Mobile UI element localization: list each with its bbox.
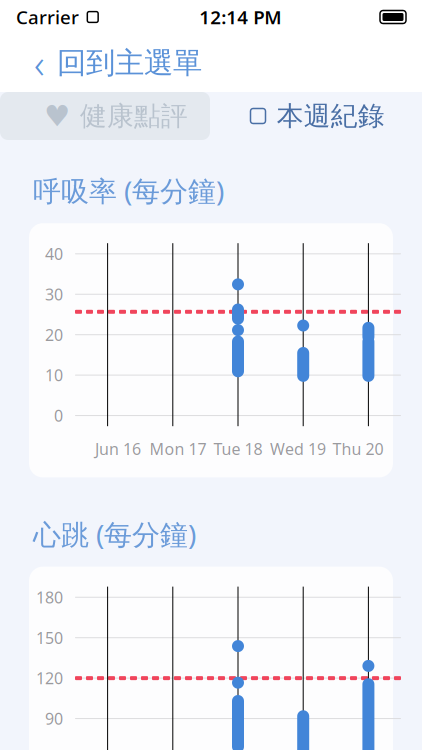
staticText: Mon 17 xyxy=(149,438,206,459)
staticText: 本週紀錄 xyxy=(277,100,385,132)
staticText: 呼吸率 (每分鐘) xyxy=(33,172,224,209)
staticText: 12:14 PM xyxy=(199,5,281,29)
button[interactable]: ♥ xyxy=(0,92,210,140)
staticText: 90 xyxy=(45,708,63,729)
staticText: 120 xyxy=(36,667,63,689)
staticText: 10 xyxy=(45,364,63,386)
staticText: 180 xyxy=(36,587,63,608)
staticText: Thu 20 xyxy=(332,438,383,459)
staticText: 30 xyxy=(45,284,63,305)
staticText: Carrier xyxy=(16,5,79,29)
button[interactable]: 本週紀錄 xyxy=(210,92,422,140)
staticText: 150 xyxy=(36,627,63,648)
staticText: 健康點評 xyxy=(80,100,188,132)
staticText: Jun 16 xyxy=(95,438,141,459)
staticText: 心跳 (每分鐘) xyxy=(33,515,196,553)
staticText: 40 xyxy=(45,243,63,264)
staticText: Wed 19 xyxy=(270,438,326,459)
staticText: 20 xyxy=(45,324,63,345)
staticText: Tue 18 xyxy=(213,438,262,459)
staticText: ‹ xyxy=(34,36,45,89)
staticText: 回到主選單 xyxy=(57,45,202,81)
staticText: 0 xyxy=(54,405,63,426)
staticText: ♥ xyxy=(44,99,70,133)
button[interactable]: ‹ xyxy=(22,28,214,97)
